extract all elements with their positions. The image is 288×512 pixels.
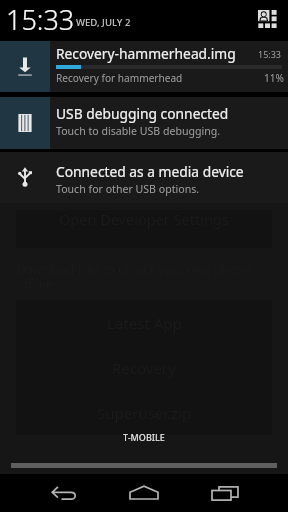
button[interactable]: Close notification shade [0,450,288,474]
button[interactable]: Superuser.zip [16,390,272,435]
staticText: 15:33 [6,1,75,38]
staticText: USB debugging connected [56,104,229,123]
staticText: 15:33 [258,48,282,60]
button[interactable]: Quick settings [253,8,282,30]
button[interactable]: Recent apps [203,478,247,508]
staticText: 11% [264,71,284,85]
button[interactable]: Connected as a media device [0,152,288,203]
button[interactable]: Recovery-hammerhead.img [0,41,288,92]
staticText: Recovery-hammerhead.img [56,44,236,63]
staticText: Touch for other USB options. [56,182,200,196]
button[interactable]: Back [42,478,86,508]
staticText: T-MOBILE [123,431,165,443]
staticText: Connected as a media device [56,162,244,181]
staticText: Touch to disable USB debugging. [56,124,221,138]
button[interactable]: USB debugging connected [0,97,288,149]
staticText: WED, JULY 2 [76,16,131,29]
button[interactable]: Home [122,478,166,508]
staticText: Recovery for hammerhead [56,71,183,85]
